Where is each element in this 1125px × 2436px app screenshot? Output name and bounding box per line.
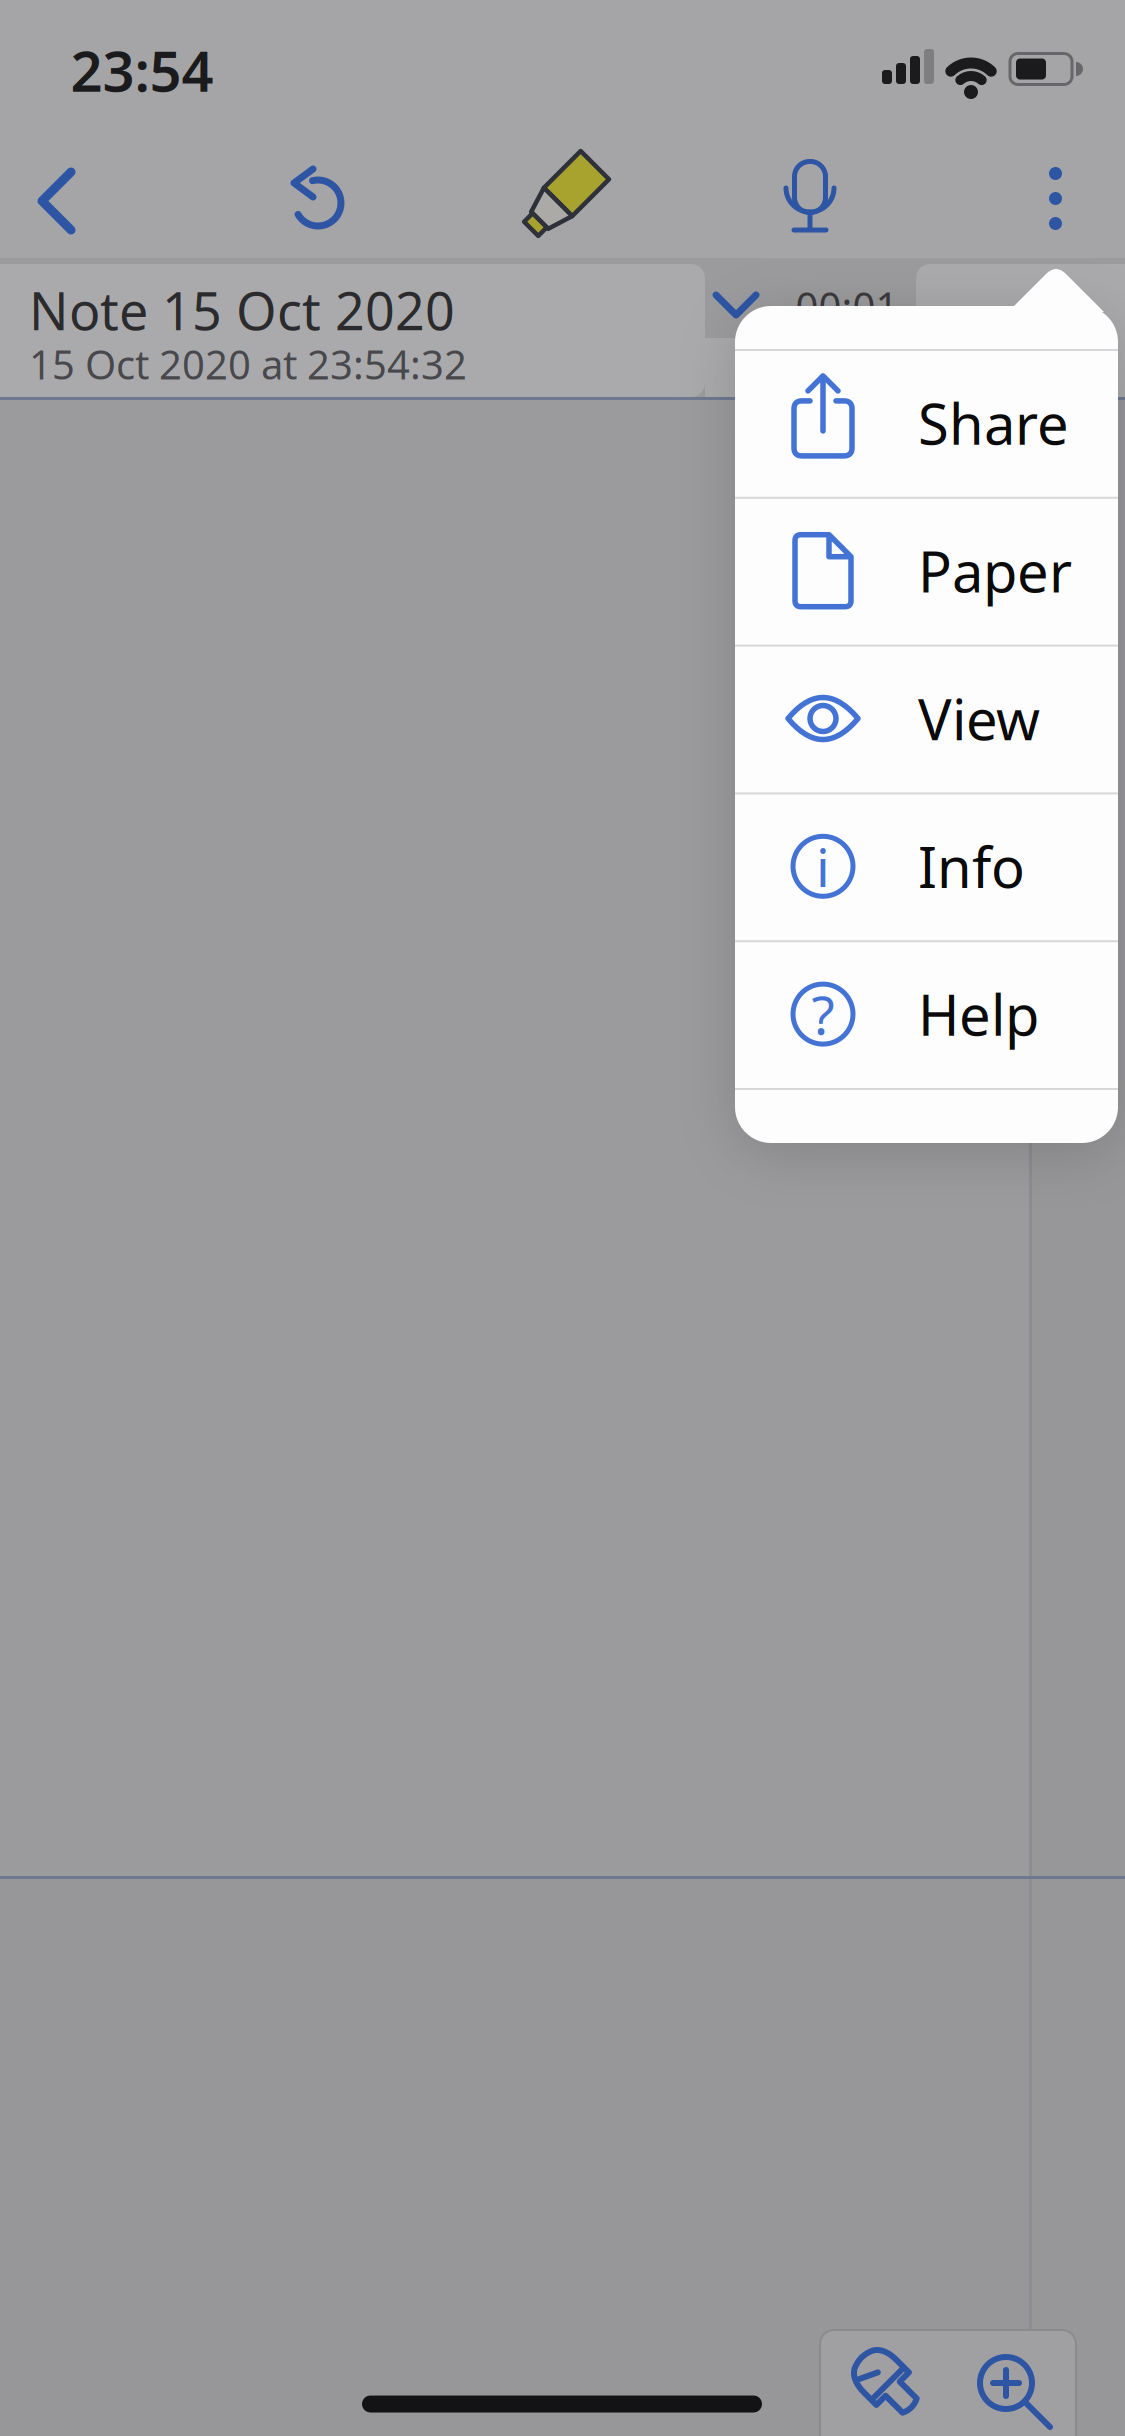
staticText: Share: [918, 386, 1069, 460]
staticText: i: [816, 831, 830, 902]
staticText: Note 15 Oct 2020: [29, 275, 455, 345]
button[interactable]: Help: [735, 942, 1118, 1086]
staticText: View: [918, 681, 1040, 756]
button[interactable]: Paper: [735, 499, 1118, 643]
button[interactable]: Zoom: [974, 2352, 1054, 2432]
button[interactable]: Eraser tools: [852, 2343, 922, 2423]
button[interactable]: Back: [32, 162, 80, 240]
staticText: 00:01: [795, 279, 898, 332]
button[interactable]: Info: [735, 794, 1118, 938]
button[interactable]: Collapse recording bar: [710, 288, 762, 322]
button[interactable]: Record audio: [784, 156, 836, 236]
button[interactable]: Undo: [288, 163, 346, 233]
staticText: Help: [918, 977, 1039, 1051]
staticText: Info: [918, 829, 1025, 903]
button[interactable]: More: [1042, 159, 1068, 237]
staticText: 15 Oct 2020 at 23:54:32: [29, 337, 467, 390]
button[interactable]: Share: [735, 351, 1118, 495]
staticText: 23:54: [70, 33, 213, 107]
staticText: Paper: [918, 533, 1072, 608]
button[interactable]: View: [735, 647, 1118, 790]
button[interactable]: Highlighter: [517, 144, 609, 250]
staticText: ?: [811, 979, 834, 1049]
